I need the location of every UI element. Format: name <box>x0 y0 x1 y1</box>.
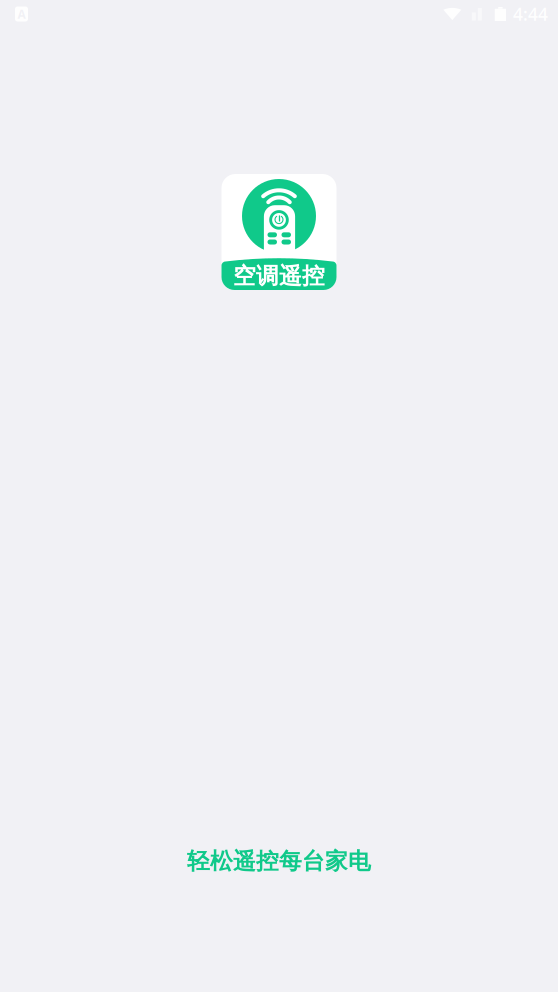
staticText: 4:44 <box>513 2 548 25</box>
staticText: A <box>17 6 25 22</box>
staticText: 空调遥控 <box>233 262 325 290</box>
staticText: 轻松遥控每台家电 <box>187 847 371 875</box>
